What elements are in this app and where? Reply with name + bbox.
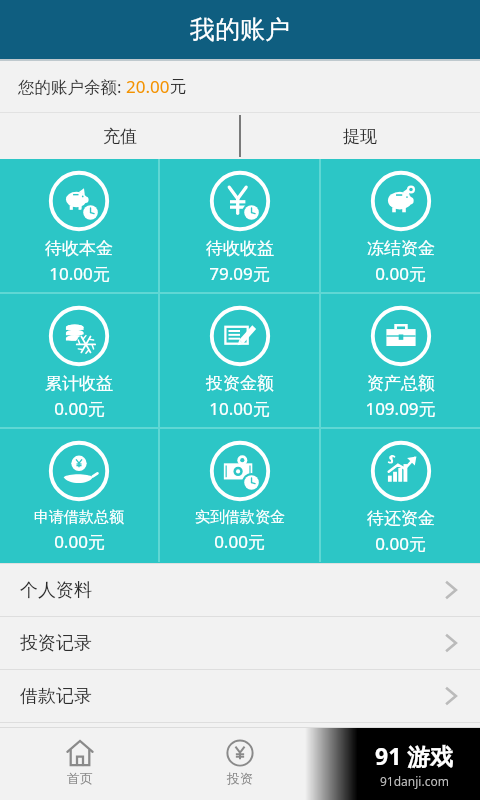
staticText: 元 <box>170 76 187 97</box>
button[interactable]: 我的账户 <box>320 728 480 800</box>
button[interactable]: 借款记录 <box>0 670 480 722</box>
staticText: 0.00元 <box>54 530 105 553</box>
staticText: 投资 <box>227 770 253 786</box>
staticText: 首页 <box>67 770 93 786</box>
staticText: 0.00元 <box>375 262 426 285</box>
staticText: 累计收益 <box>45 373 113 394</box>
staticText: 109.09元 <box>365 397 436 420</box>
button[interactable]: 充值 <box>0 113 240 159</box>
staticText: 冻结资金 <box>367 238 435 259</box>
staticText: 79.09元 <box>209 262 270 285</box>
staticText: 申请借款总额 <box>34 508 124 527</box>
staticText: 提现 <box>343 126 377 147</box>
staticText: 10.00元 <box>209 397 270 420</box>
button[interactable]: 实到借款资金 <box>160 429 319 562</box>
button[interactable]: 提现 <box>240 113 480 159</box>
staticText: 91 游戏 <box>375 740 454 771</box>
staticText: 我的账户 <box>374 770 426 786</box>
staticText: 您的账户余额: <box>18 75 126 98</box>
button[interactable]: 投资记录 <box>0 617 480 669</box>
staticText: 20.00 <box>126 75 170 98</box>
button[interactable]: 首页 <box>0 728 160 800</box>
button[interactable]: 待收收益 <box>160 159 319 292</box>
button[interactable]: 冻结资金 <box>321 159 480 292</box>
staticText: 投资记录 <box>20 632 92 655</box>
staticText: 91danji.com <box>380 773 449 789</box>
staticText: 实到借款资金 <box>195 508 285 527</box>
staticText: 0.00元 <box>214 530 265 553</box>
button[interactable]: 个人资料 <box>0 564 480 616</box>
button[interactable]: 申请借款总额 <box>0 429 158 562</box>
button[interactable]: 投资 <box>160 728 320 800</box>
staticText: 待还资金 <box>367 508 435 529</box>
staticText: 0.00元 <box>54 397 105 420</box>
staticText: 10.00元 <box>49 262 110 285</box>
staticText: 资产总额 <box>367 373 435 394</box>
button[interactable]: 投资金额 <box>160 294 319 427</box>
staticText: 充值 <box>103 126 137 147</box>
staticText: 0.00元 <box>375 532 426 555</box>
button[interactable]: 资产总额 <box>321 294 480 427</box>
button[interactable]: 待还资金 <box>321 429 480 562</box>
button[interactable]: 待收本金 <box>0 159 158 292</box>
staticText: 待收本金 <box>45 238 113 259</box>
staticText: 个人资料 <box>20 579 92 602</box>
staticText: 借款记录 <box>20 685 92 708</box>
staticText: 我的账户 <box>190 14 290 45</box>
button[interactable]: 累计收益 <box>0 294 158 427</box>
staticText: 投资金额 <box>206 373 274 394</box>
staticText: 待收收益 <box>206 238 274 259</box>
